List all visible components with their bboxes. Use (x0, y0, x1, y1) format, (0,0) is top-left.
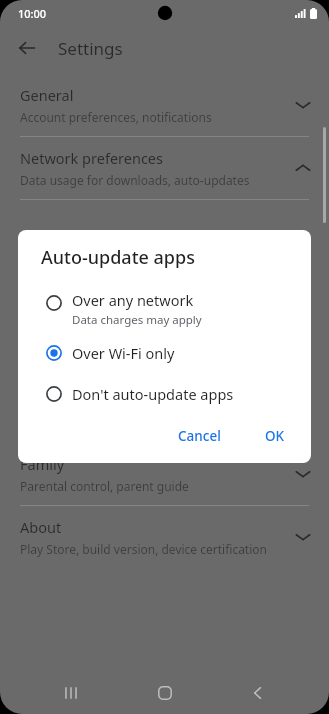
staticText: General (20, 85, 74, 105)
button[interactable]: Don't auto-update apps (18, 373, 311, 414)
staticText: Play Store, build version, device certif… (20, 541, 267, 557)
button[interactable]: About (0, 506, 329, 568)
button[interactable]: Family (0, 443, 329, 505)
staticText: Parental control, parent guide (20, 478, 189, 494)
button[interactable]: Cancel (166, 419, 233, 453)
button[interactable]: Over any network (18, 290, 311, 332)
staticText: Cancel (178, 427, 221, 445)
staticText: Data usage for downloads, auto-updates (20, 172, 250, 188)
staticText: Auto-update apps (41, 245, 195, 270)
staticText: About (20, 517, 62, 537)
button[interactable]: Home (143, 672, 187, 714)
button[interactable]: Over Wi-Fi only (18, 332, 311, 373)
staticText: Network preferences (20, 148, 163, 168)
button[interactable]: General (0, 74, 329, 136)
button[interactable]: Back (236, 672, 280, 714)
staticText: Fingerprint, purchase authentication (20, 415, 227, 431)
staticText: Data charges may apply (72, 312, 202, 328)
staticText: Over any network (72, 290, 194, 310)
staticText: Don't auto-update apps (72, 384, 234, 404)
button[interactable]: Network preferences (0, 137, 329, 199)
staticText: Authentication (20, 391, 121, 411)
button[interactable]: Authentication (0, 380, 329, 442)
staticText: Over Wi-Fi only (72, 343, 175, 363)
staticText: Settings (58, 37, 123, 60)
staticText: OK (265, 427, 285, 445)
button[interactable]: Back (10, 31, 44, 65)
button[interactable]: OK (253, 419, 297, 453)
staticText: Account preferences, notifications (20, 109, 212, 125)
staticText: Family (20, 454, 65, 474)
button[interactable]: Recent apps (49, 672, 93, 714)
staticText: 10:00 (18, 6, 47, 21)
